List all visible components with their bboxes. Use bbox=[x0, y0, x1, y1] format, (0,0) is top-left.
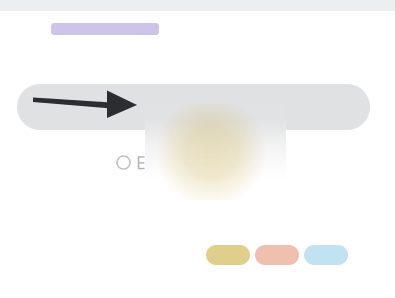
staticText: E bbox=[136, 151, 146, 174]
button[interactable]: Title bbox=[51, 23, 159, 35]
button[interactable]: Action bar bbox=[17, 84, 370, 130]
